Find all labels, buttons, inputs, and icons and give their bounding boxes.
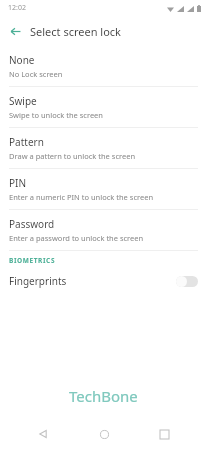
staticText: Swipe [9, 94, 37, 108]
staticText: Select screen lock [30, 24, 121, 39]
staticText: Enter a password to unlock the screen [9, 233, 144, 243]
button[interactable]: PIN [0, 169, 207, 210]
button[interactable]: Home [87, 418, 121, 450]
button[interactable]: Recent apps [147, 418, 181, 450]
button[interactable]: Swipe [0, 87, 207, 128]
staticText: No Lock screen [9, 69, 63, 79]
staticText: BIOMETRICS [9, 256, 56, 265]
staticText: 12:02 [8, 3, 26, 13]
button[interactable]: Navigate up [0, 16, 30, 46]
staticText: Draw a pattern to unlock the screen [9, 151, 136, 161]
staticText: Password [9, 217, 55, 231]
staticText: TechBone [69, 386, 138, 406]
staticText: Fingerprints [9, 274, 176, 288]
button[interactable]: Fingerprints [0, 269, 207, 293]
staticText: Pattern [9, 135, 44, 149]
staticText: Swipe to unlock the screen [9, 110, 103, 120]
button[interactable]: None [0, 46, 207, 87]
staticText: None [9, 53, 35, 67]
staticText: PIN [9, 176, 27, 190]
staticText: Enter a numeric PIN to unlock the screen [9, 192, 154, 202]
button[interactable]: Pattern [0, 128, 207, 169]
button[interactable]: Back [26, 418, 60, 450]
button[interactable]: Password [0, 210, 207, 251]
